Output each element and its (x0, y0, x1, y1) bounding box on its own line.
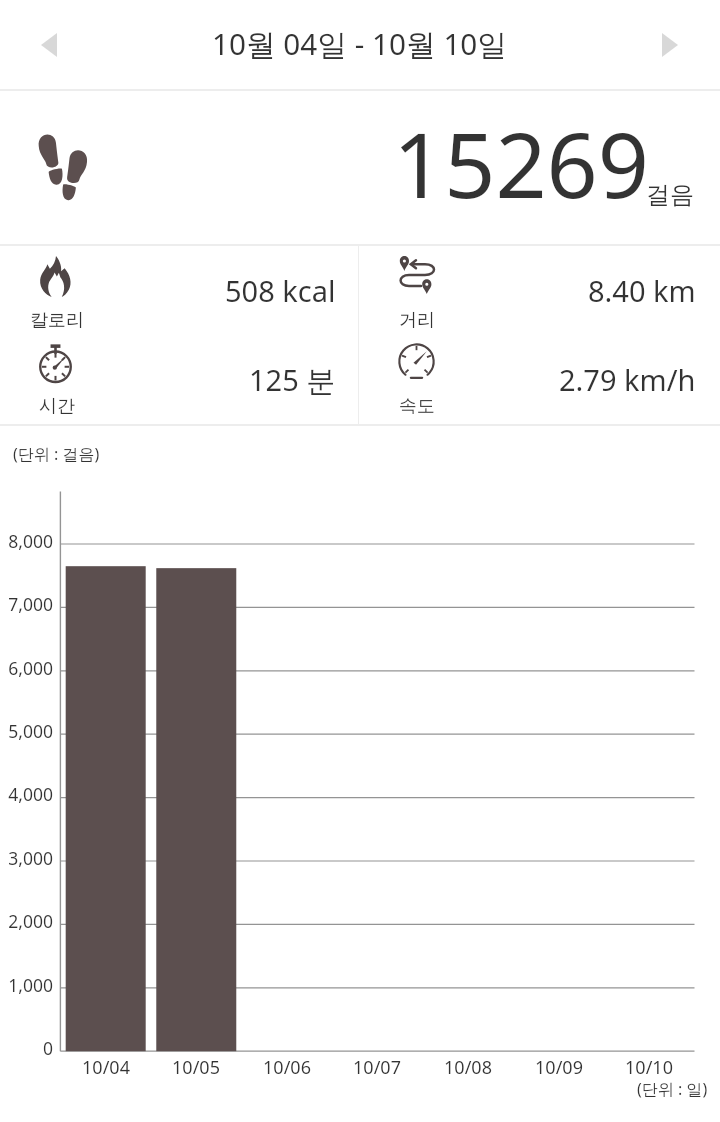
staticText: 10/08 (423, 1055, 513, 1080)
staticText: 시간 (39, 395, 75, 418)
staticText: 칼로리 (30, 309, 84, 332)
button[interactable]: 15269 (0, 91, 720, 244)
staticText: 4,000 (2, 782, 53, 806)
staticText: 5,000 (2, 719, 53, 743)
staticText: (단위 : 걸음) (13, 443, 100, 465)
staticText: (단위 : 일) (637, 1078, 708, 1100)
button[interactable]: 칼로리 (0, 246, 358, 335)
staticText: 10/10 (604, 1055, 694, 1080)
staticText: 7,000 (2, 592, 53, 616)
staticText: 1,000 (2, 973, 53, 997)
staticText: 508 kcal (225, 271, 336, 310)
staticText: 8.40 km (588, 271, 696, 310)
staticText: 15269 (393, 102, 649, 224)
staticText: 6,000 (2, 656, 53, 680)
staticText: 걸음 (646, 180, 694, 210)
button[interactable]: 시간 (0, 335, 358, 424)
staticText: 10/04 (61, 1055, 151, 1080)
button[interactable]: 거리 (359, 246, 720, 335)
button[interactable]: 속도 (359, 335, 720, 424)
staticText: 10/06 (242, 1055, 332, 1080)
staticText: 125 분 (249, 360, 336, 400)
button[interactable]: Next week (610, 0, 720, 90)
button[interactable]: Previous week (0, 0, 98, 90)
staticText: 10월 04일 - 10월 10일 (212, 23, 508, 64)
staticText: 10/05 (151, 1055, 241, 1080)
staticText: 거리 (399, 309, 435, 332)
staticText: 2,000 (2, 909, 53, 933)
staticText: 10/09 (514, 1055, 604, 1080)
staticText: 3,000 (2, 846, 53, 870)
staticText: 속도 (399, 395, 435, 418)
staticText: 2.79 km/h (559, 360, 696, 399)
staticText: 10/07 (332, 1055, 422, 1080)
staticText: 0 (2, 1036, 53, 1060)
staticText: 8,000 (2, 529, 53, 553)
